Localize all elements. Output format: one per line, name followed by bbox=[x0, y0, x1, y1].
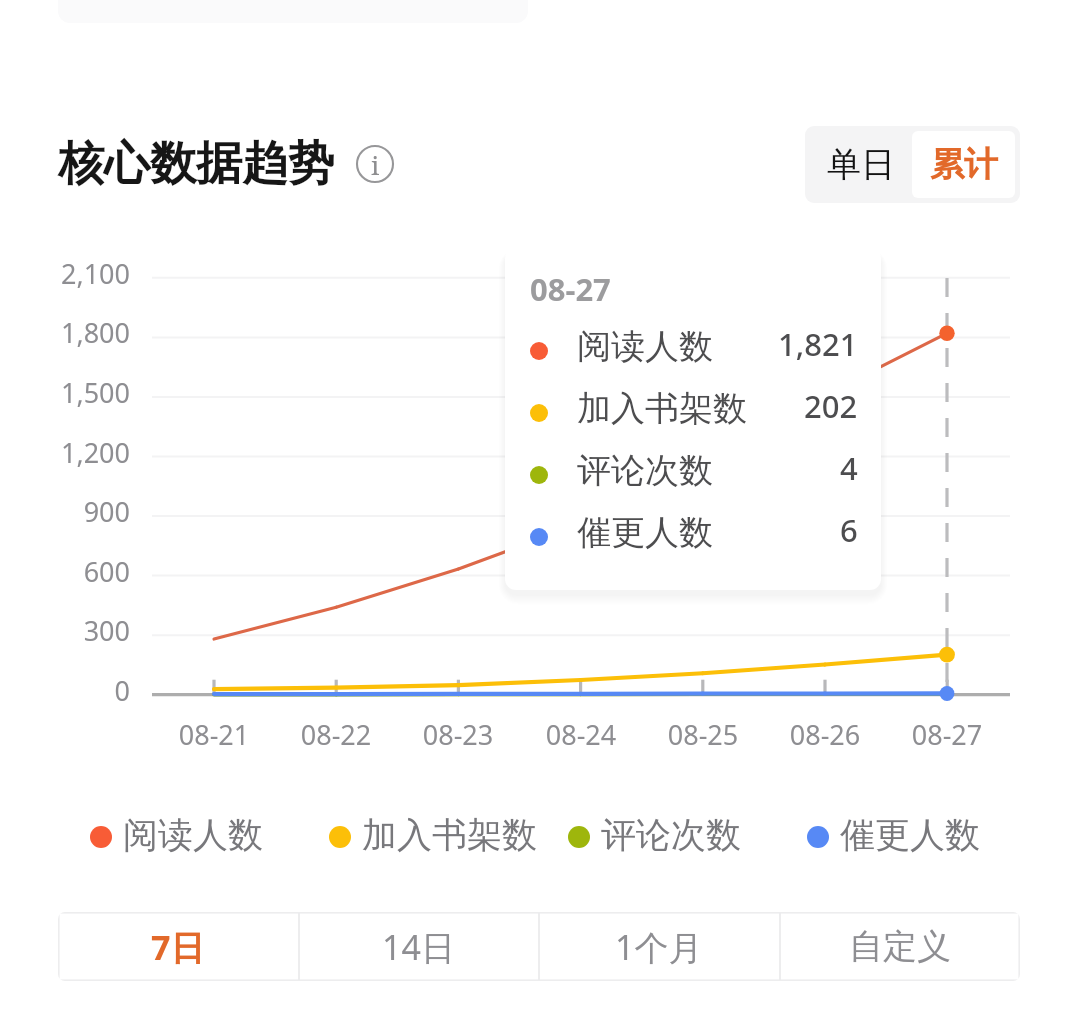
staticText: 1,800 bbox=[0, 314, 130, 351]
staticText: 自定义 bbox=[849, 925, 951, 968]
staticText: 阅读人数 bbox=[123, 813, 263, 857]
staticText: 7日 bbox=[151, 924, 205, 970]
staticText: 300 bbox=[0, 612, 130, 649]
button[interactable]: 累计 bbox=[912, 131, 1015, 198]
staticText: 加入书架数 bbox=[577, 387, 747, 430]
staticText: 2,100 bbox=[0, 255, 130, 292]
button[interactable]: 14日 bbox=[298, 912, 538, 981]
staticText: 1,821 bbox=[778, 323, 858, 365]
button[interactable]: 评论次数 bbox=[568, 808, 741, 865]
staticText: 202 bbox=[804, 385, 858, 427]
staticText: 评论次数 bbox=[601, 813, 741, 857]
button[interactable]: 阅读人数 bbox=[90, 808, 263, 865]
staticText: 单日 bbox=[827, 143, 895, 186]
staticText: 08-25 bbox=[633, 716, 773, 753]
staticText: 08-21 bbox=[144, 716, 284, 753]
staticText: 08-24 bbox=[511, 716, 651, 753]
staticText: 累计 bbox=[930, 143, 998, 186]
staticText: 1,500 bbox=[0, 374, 130, 411]
staticText: 6 bbox=[840, 509, 858, 551]
staticText: 评论次数 bbox=[577, 449, 713, 492]
button[interactable]: 单日 bbox=[810, 131, 912, 198]
staticText: 08-22 bbox=[266, 716, 406, 753]
staticText: 催更人数 bbox=[577, 511, 713, 554]
staticText: 加入书架数 bbox=[362, 813, 537, 857]
button[interactable]: 自定义 bbox=[779, 912, 1020, 981]
staticText: 1个月 bbox=[615, 924, 703, 970]
staticText: 催更人数 bbox=[840, 813, 980, 857]
staticText: 900 bbox=[0, 493, 130, 530]
staticText: 600 bbox=[0, 553, 130, 590]
staticText: 08-27 bbox=[530, 268, 611, 310]
staticText: 14日 bbox=[382, 924, 455, 970]
button[interactable]: 催更人数 bbox=[807, 808, 980, 865]
staticText: i bbox=[371, 147, 380, 182]
staticText: 阅读人数 bbox=[577, 325, 713, 368]
staticText: 08-26 bbox=[755, 716, 895, 753]
staticText: 4 bbox=[840, 447, 858, 489]
staticText: 08-23 bbox=[388, 716, 528, 753]
staticText: 0 bbox=[0, 672, 130, 709]
staticText: 1,200 bbox=[0, 434, 130, 471]
button[interactable]: 加入书架数 bbox=[329, 808, 537, 865]
button[interactable]: 7日 bbox=[58, 912, 298, 981]
button[interactable]: Info bbox=[355, 144, 395, 184]
button[interactable]: 1个月 bbox=[538, 912, 779, 981]
staticText: 核心数据趋势 bbox=[58, 135, 334, 193]
staticText: 08-27 bbox=[877, 716, 1017, 753]
